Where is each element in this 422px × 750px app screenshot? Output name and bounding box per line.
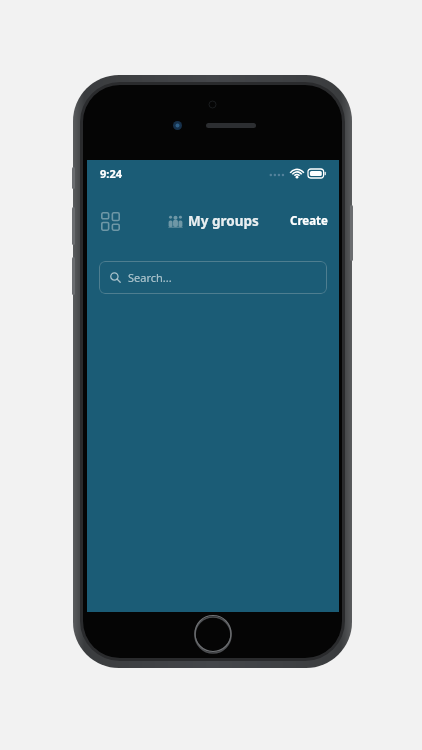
button[interactable]: Create (279, 207, 339, 235)
staticText: Search... (128, 270, 172, 285)
staticText: My groups (188, 212, 259, 230)
button[interactable]: Dashboard (95, 206, 125, 236)
button[interactable]: My groups (168, 212, 259, 230)
staticText: Create (290, 213, 328, 229)
other: Home (194, 616, 232, 654)
button[interactable]: Search... (99, 261, 327, 294)
staticText: 9:24 (100, 166, 122, 181)
